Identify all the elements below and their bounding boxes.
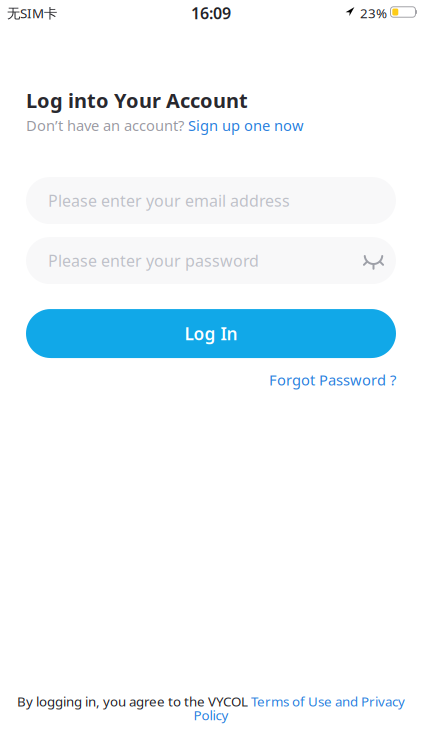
- staticText: By logging in, you agree to the VYCOL: [17, 693, 251, 710]
- button[interactable]: Policy: [193, 706, 228, 724]
- staticText: 无SIM卡: [7, 4, 57, 22]
- staticText: Please enter your password: [48, 250, 259, 271]
- button[interactable]: Log In: [26, 309, 396, 358]
- staticText: Policy: [193, 706, 228, 724]
- staticText: Please enter your email address: [48, 190, 290, 211]
- staticText: Log into Your Account: [26, 87, 248, 114]
- button[interactable]: Sign up one now: [188, 116, 304, 135]
- staticText: 23%: [360, 4, 387, 22]
- staticText: 16:09: [191, 2, 231, 24]
- staticText: Log In: [184, 322, 237, 345]
- button[interactable]: Terms of Use and Privacy: [251, 693, 405, 710]
- staticText: Terms of Use and Privacy: [251, 693, 405, 710]
- button[interactable]: Show password: [363, 252, 396, 268]
- staticText: Sign up one now: [188, 116, 304, 135]
- staticText: Don’t have an account?: [26, 116, 188, 135]
- button[interactable]: Forgot Password ?: [269, 370, 396, 389]
- staticText: Forgot Password ?: [269, 370, 396, 389]
